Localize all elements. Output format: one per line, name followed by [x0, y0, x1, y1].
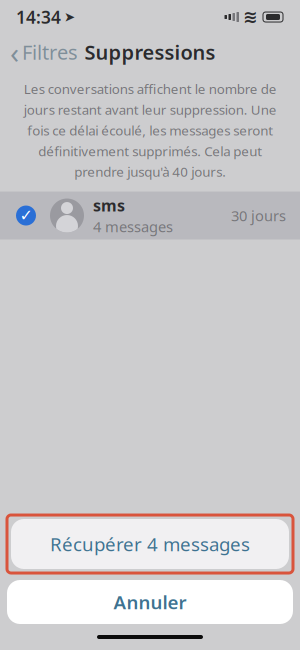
staticText: ‹ — [10, 32, 19, 71]
staticText: Annuler — [113, 590, 186, 614]
button[interactable]: Annuler — [7, 580, 293, 624]
staticText: ≋ — [243, 7, 258, 27]
staticText: Récupérer 4 messages — [50, 532, 250, 556]
button[interactable]: ‹ — [0, 35, 88, 69]
staticText: Les conversations affichent le nombre de… — [23, 80, 276, 180]
staticText: 4 messages — [93, 217, 173, 236]
staticText: 30 jours — [231, 206, 286, 225]
staticText: sms — [93, 195, 125, 216]
staticText: ✓ — [19, 206, 32, 225]
staticText: ➤ — [64, 9, 75, 24]
staticText: 14:34 — [16, 5, 61, 28]
button[interactable]: Récupérer 4 messages — [11, 519, 289, 569]
staticText: Filtres — [22, 39, 78, 65]
button[interactable]: ✓ — [0, 191, 300, 239]
staticText: Suppressions — [84, 39, 215, 65]
